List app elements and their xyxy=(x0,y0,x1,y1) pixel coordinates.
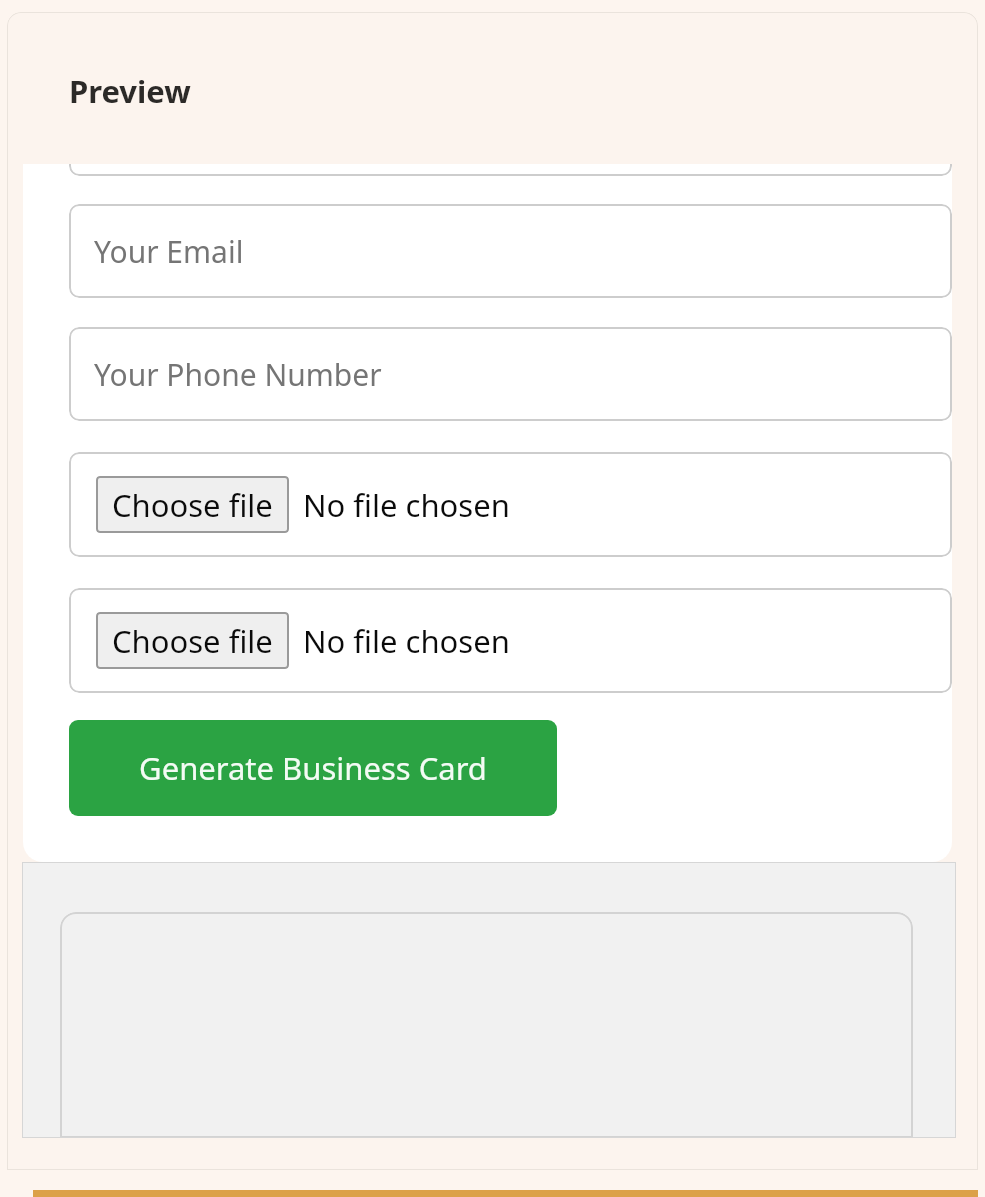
button[interactable]: Your Phone Number xyxy=(69,327,952,421)
button[interactable]: Your Email xyxy=(69,204,952,298)
staticText: No file chosen xyxy=(303,620,510,662)
staticText: Generate Business Card xyxy=(139,747,487,789)
button[interactable] xyxy=(69,164,952,176)
staticText: Choose file xyxy=(112,484,273,526)
button[interactable]: Choose file xyxy=(96,476,289,533)
button[interactable]: Generate Business Card xyxy=(69,720,557,816)
staticText: Preview xyxy=(69,70,191,112)
button[interactable]: Choose file xyxy=(96,612,289,669)
staticText: No file chosen xyxy=(303,484,510,526)
staticText: Your Phone Number xyxy=(94,354,382,395)
staticText: Your Email xyxy=(94,231,244,272)
staticText: Choose file xyxy=(112,620,273,662)
